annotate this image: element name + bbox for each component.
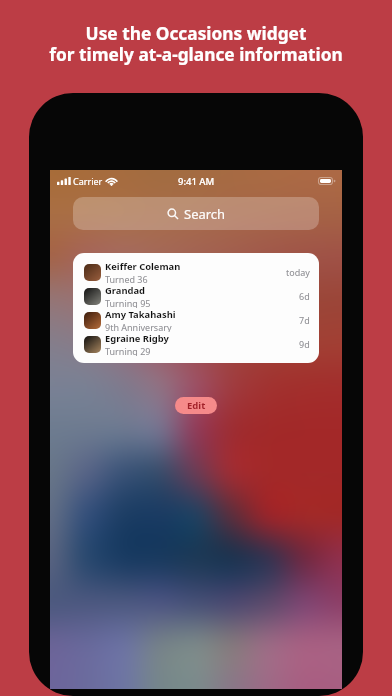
staticText: Keiffer Coleman <box>105 260 181 273</box>
staticText: Grandad <box>105 284 146 297</box>
staticText: Turning 95 <box>105 297 151 308</box>
staticText: Search <box>184 205 226 223</box>
button[interactable]: Grandad <box>73 284 319 308</box>
staticText: 7d <box>299 314 310 326</box>
staticText: today <box>286 266 310 278</box>
button[interactable]: Amy Takahashi <box>73 308 319 332</box>
button[interactable]: Egraine Rigby <box>73 332 319 356</box>
staticText: Turned 36 <box>105 273 148 284</box>
staticText: Amy Takahashi <box>105 308 176 321</box>
staticText: Use the Occasions widget for timely at-a… <box>49 22 343 66</box>
staticText: Turning 29 <box>105 345 151 356</box>
button[interactable]: Keiffer Coleman <box>73 260 319 284</box>
staticText: 9:41 AM <box>178 175 215 188</box>
staticText: 9th Anniversary <box>105 321 172 332</box>
button[interactable]: Search <box>73 197 319 230</box>
staticText: Egraine Rigby <box>105 332 169 345</box>
staticText: Carrier <box>73 175 103 187</box>
staticText: 9d <box>299 338 310 350</box>
staticText: 6d <box>299 290 310 302</box>
staticText: Edit <box>187 399 206 412</box>
button[interactable]: Edit <box>175 397 217 414</box>
